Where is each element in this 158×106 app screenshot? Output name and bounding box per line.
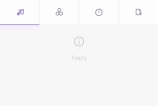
button[interactable]: Files <box>119 0 158 24</box>
button[interactable]: Artists <box>40 0 79 24</box>
button[interactable]: Songs <box>0 0 39 24</box>
button[interactable]: Recents <box>79 0 118 24</box>
staticText: Empty <box>72 55 87 61</box>
